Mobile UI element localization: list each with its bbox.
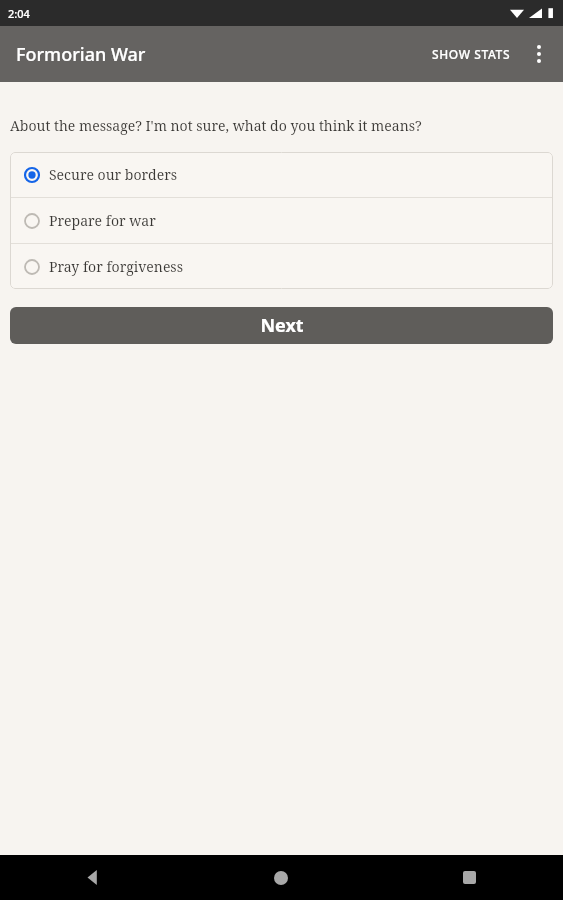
staticText: Formorian War	[16, 42, 146, 67]
button[interactable]: Next	[10, 307, 553, 344]
button[interactable]: Back	[0, 855, 187, 900]
staticText: Prepare for war	[49, 211, 156, 230]
staticText: Next	[260, 313, 304, 338]
button[interactable]: Pray for forgiveness	[10, 244, 553, 289]
button[interactable]: SHOW STATS	[424, 38, 519, 70]
button[interactable]: Secure our borders	[10, 152, 553, 197]
button[interactable]: Prepare for war	[10, 198, 553, 243]
staticText: SHOW STATS	[432, 46, 511, 62]
button[interactable]: More options	[519, 34, 559, 74]
button[interactable]: Recent apps	[375, 855, 563, 900]
staticText: Secure our borders	[49, 165, 178, 184]
staticText: 2:04	[8, 6, 30, 21]
staticText: Pray for forgiveness	[49, 257, 183, 276]
button[interactable]: Home	[187, 855, 375, 900]
staticText: About the message? I'm not sure, what do…	[10, 116, 422, 135]
